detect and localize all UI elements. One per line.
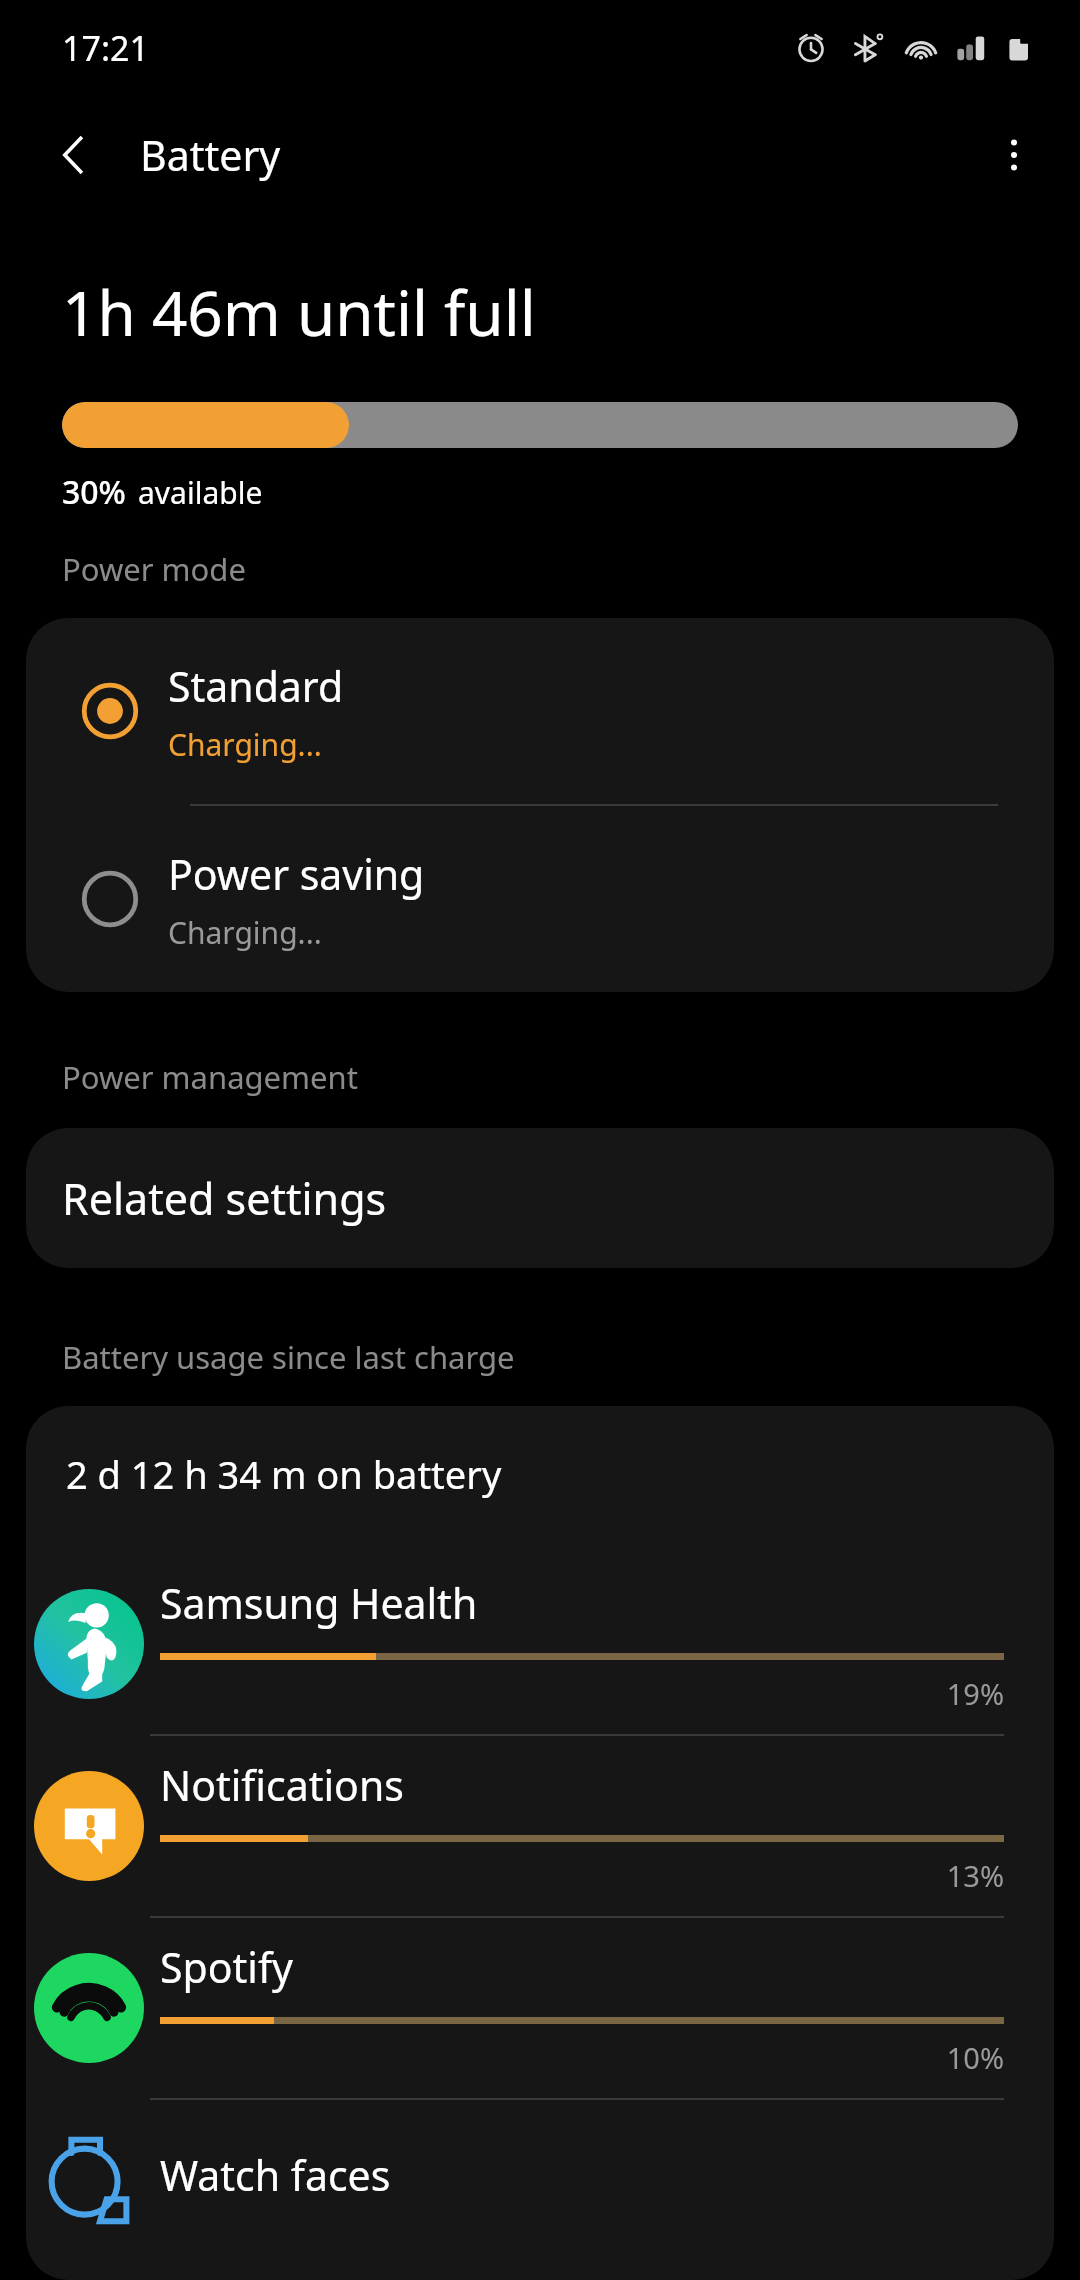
staticText: Charging...: [168, 912, 322, 953]
staticText: 2 d 12 h 34 m on battery: [66, 1448, 502, 1500]
staticText: Related settings: [62, 1169, 387, 1228]
staticText: available: [138, 472, 263, 513]
staticText: Power mode: [62, 548, 246, 590]
staticText: 30%: [62, 470, 126, 514]
staticText: Standard: [168, 658, 344, 714]
staticText: Samsung Health: [160, 1575, 478, 1631]
staticText: 17:21: [62, 25, 149, 71]
button[interactable]: Related settings: [26, 1128, 1054, 1268]
button[interactable]: Watch faces: [26, 2100, 1054, 2250]
staticText: Battery usage since last charge: [62, 1336, 515, 1378]
staticText: Power management: [62, 1056, 358, 1098]
staticText: 1h 46m until full: [62, 270, 536, 354]
button[interactable]: Spotify: [26, 1918, 1054, 2098]
button[interactable]: Notifications: [26, 1736, 1054, 1916]
button[interactable]: Back: [36, 117, 112, 193]
staticText: Power saving: [168, 846, 425, 902]
button[interactable]: More options: [974, 115, 1054, 195]
button[interactable]: Standard: [26, 618, 1054, 804]
staticText: 19%: [160, 1674, 1004, 1713]
staticText: Battery: [140, 127, 281, 183]
staticText: Charging...: [168, 724, 322, 765]
staticText: 10%: [160, 2038, 1004, 2077]
staticText: 13%: [160, 1856, 1004, 1895]
button[interactable]: Power saving: [26, 806, 1054, 992]
staticText: Spotify: [160, 1939, 293, 1995]
staticText: Notifications: [160, 1757, 404, 1813]
staticText: Watch faces: [160, 2147, 391, 2203]
button[interactable]: Samsung Health: [26, 1554, 1054, 1734]
